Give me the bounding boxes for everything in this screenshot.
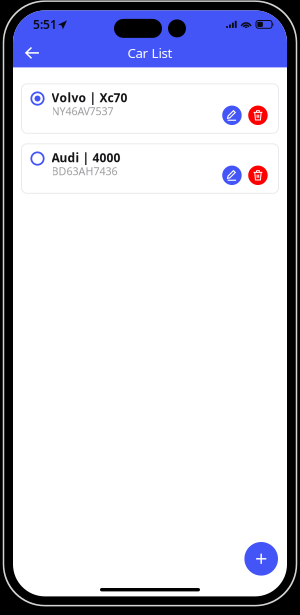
button[interactable]: Delete — [248, 106, 268, 125]
button[interactable]: Edit — [222, 106, 242, 125]
button[interactable]: Volvo | Xc70 — [21, 84, 278, 133]
button[interactable]: Delete — [248, 166, 268, 185]
button[interactable]: Back — [20, 41, 45, 65]
button[interactable]: Audi | 4000 — [21, 144, 278, 193]
button[interactable]: Add car — [244, 542, 278, 576]
staticText: BD63AH7436 — [51, 164, 117, 178]
staticText: NY46AV7537 — [51, 104, 113, 118]
staticText: 5:51 — [33, 16, 57, 32]
staticText: Audi | 4000 — [51, 150, 120, 165]
button[interactable]: Edit — [222, 166, 242, 185]
staticText: Volvo | Xc70 — [51, 90, 127, 105]
staticText: Car List — [127, 44, 172, 62]
